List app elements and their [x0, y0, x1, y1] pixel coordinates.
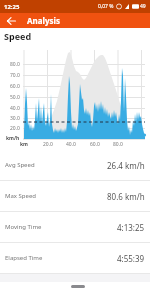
- staticText: 40.0: [66, 141, 76, 148]
- staticText: 4:13:25: [117, 222, 145, 233]
- staticText: 12:25: [4, 3, 20, 11]
- staticText: km: [20, 141, 28, 148]
- staticText: Speed: [4, 30, 32, 42]
- staticText: 60.0: [10, 83, 20, 90]
- staticText: Moving Time: [5, 223, 42, 231]
- staticText: 20.0: [43, 141, 53, 148]
- button[interactable]: Max Speed: [0, 181, 150, 211]
- staticText: 26.4 km/h: [107, 160, 145, 171]
- staticText: km/h: [6, 135, 20, 142]
- button[interactable]: [71, 285, 85, 288]
- staticText: 40.0: [10, 105, 20, 112]
- button[interactable]: Moving Time: [0, 212, 150, 242]
- button[interactable]: [0, 13, 22, 28]
- staticText: 49: [140, 3, 146, 10]
- staticText: 30.0: [10, 115, 20, 122]
- staticText: Max Speed: [5, 192, 36, 200]
- staticText: 4:55:39: [117, 253, 145, 264]
- staticText: Avg Speed: [5, 161, 35, 169]
- staticText: 20.0: [10, 125, 20, 132]
- button[interactable]: Elapsed Time: [0, 243, 150, 273]
- staticText: Elapsed Time: [5, 254, 43, 262]
- staticText: 50.0: [10, 94, 20, 101]
- staticText: 0,07 %: [98, 3, 114, 10]
- staticText: 80.0: [113, 141, 123, 148]
- staticText: 70.0: [10, 72, 20, 79]
- staticText: 60.0: [90, 141, 100, 148]
- staticText: 80.6 km/h: [107, 191, 145, 202]
- staticText: Analysis: [27, 15, 60, 26]
- button[interactable]: Avg Speed: [0, 150, 150, 180]
- staticText: 80.0: [10, 61, 20, 68]
